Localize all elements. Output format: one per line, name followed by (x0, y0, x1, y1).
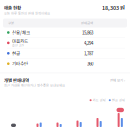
staticText: 15,863 (82, 29, 93, 36)
button[interactable]: 신용/체크 (0, 27, 130, 37)
staticText: 개별 판매내역 (4, 77, 29, 83)
staticText: 전체 보기 › (110, 78, 125, 83)
button[interactable]: 현금 (0, 48, 130, 58)
staticText: 구분 (8, 21, 14, 25)
button[interactable]: 전체 보기 › (110, 77, 125, 83)
staticText: 현금 결제 (112, 98, 125, 102)
staticText: 4,294 (84, 40, 93, 46)
staticText: 360 (87, 60, 93, 67)
staticText: 1,787 (84, 50, 93, 56)
button[interactable]: 기타수단 (0, 59, 130, 69)
staticText: 기타수단 (12, 60, 28, 67)
staticText: 카드 결제 (93, 98, 106, 102)
staticText: 최근 거래를 확인하거나 영수증을 보내보세요 (4, 83, 65, 88)
staticText: 현금 (12, 50, 20, 56)
staticText: 마음카드 (12, 38, 28, 44)
staticText: 18,303 원 (102, 4, 125, 12)
button[interactable]: 마음카드 (0, 38, 130, 48)
staticText: 오늘 하루 동안의 판매 실적이에요 (4, 11, 50, 15)
staticText: 승인 3건 (12, 43, 24, 48)
staticText: 판매금액 (81, 21, 93, 25)
staticText: 매출 현황 (4, 4, 21, 11)
staticText: 신용/체크 (12, 29, 30, 36)
